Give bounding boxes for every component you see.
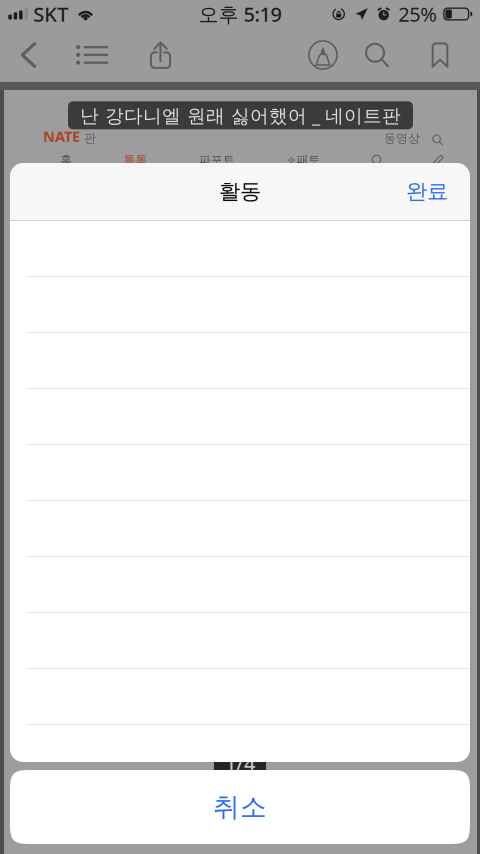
button[interactable]: Safari Reader (296, 28, 350, 82)
button[interactable]: Search (350, 28, 404, 82)
staticText: ✧패토 (286, 153, 320, 167)
staticText: 파포트 (199, 153, 235, 167)
staticText: 판 (80, 131, 96, 146)
staticText: 홈 (60, 153, 72, 167)
staticText: 오후 5:19 (198, 1, 281, 27)
staticText: NATE (43, 126, 80, 146)
button[interactable]: Back (0, 28, 57, 82)
staticText: 톡톡 (123, 153, 147, 167)
button[interactable]: Share (130, 28, 190, 82)
staticText: 난 강다니엘 원래 싫어했어 _ 네이트판 (80, 103, 401, 128)
staticText: 동영상 (384, 131, 420, 146)
button[interactable]: 완료 (392, 167, 462, 216)
staticText: 1/4 (225, 750, 255, 777)
button[interactable]: 취소 (10, 770, 470, 844)
staticText: 완료 (406, 178, 448, 205)
staticText: 25% (398, 1, 437, 27)
staticText: SKT (33, 1, 68, 27)
button[interactable]: Bookmarks (413, 28, 467, 82)
button[interactable]: Reading List (61, 28, 124, 82)
staticText: 취소 (213, 791, 267, 823)
staticText: 활동 (219, 178, 261, 205)
